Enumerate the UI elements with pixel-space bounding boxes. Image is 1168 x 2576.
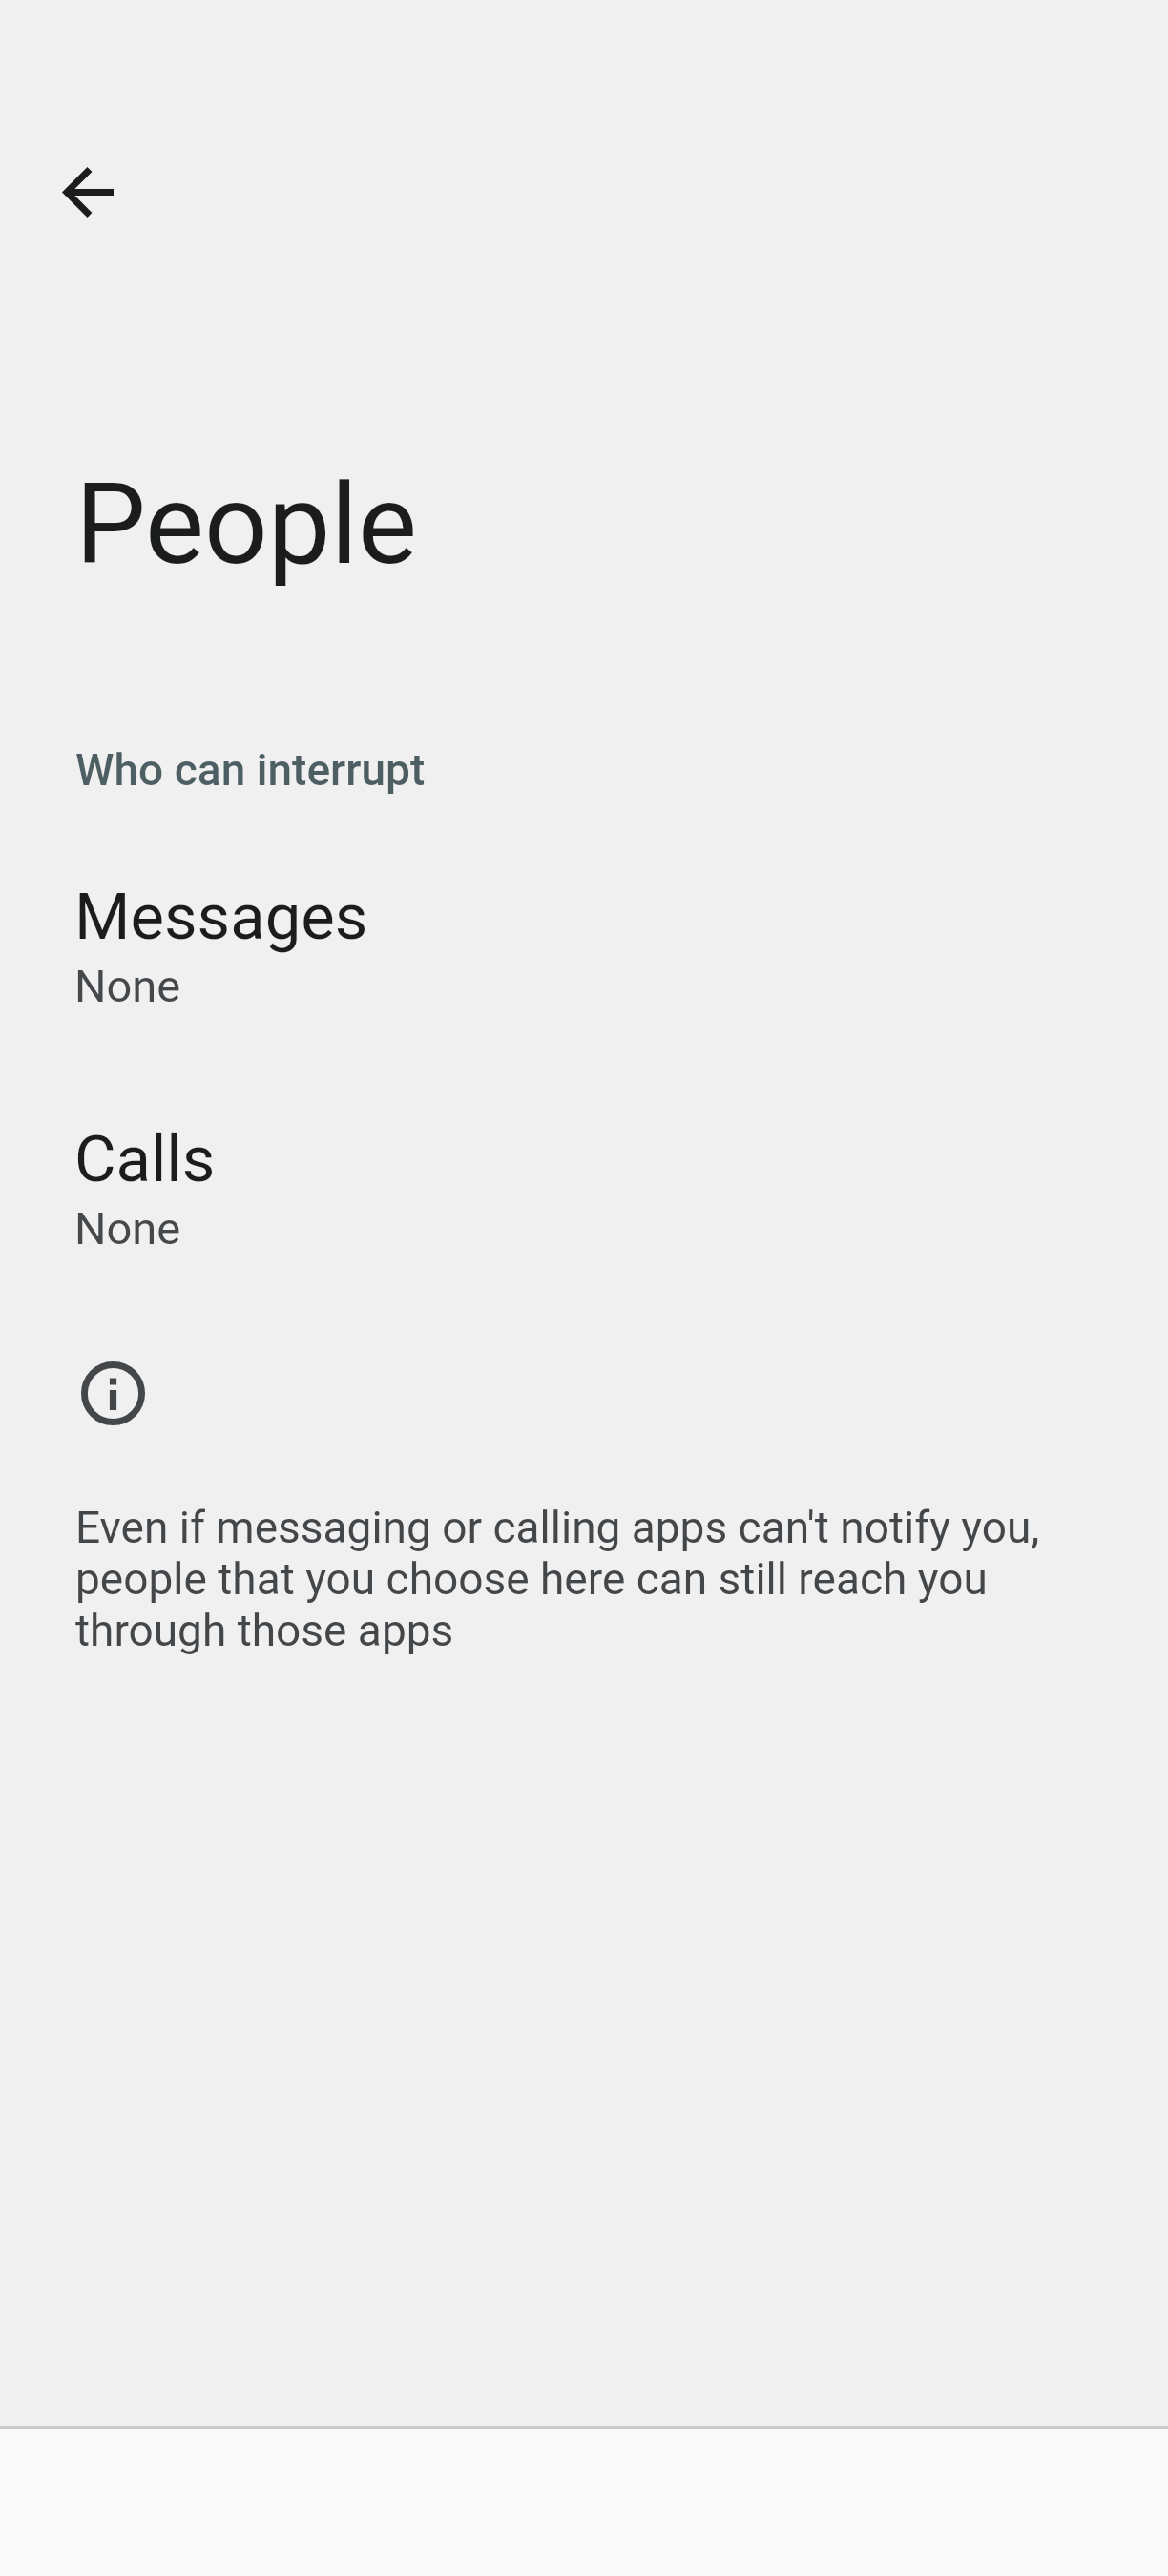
button[interactable]: Messages	[0, 864, 1168, 1036]
staticText: None	[74, 960, 181, 1012]
staticText: Messages	[74, 880, 368, 955]
staticText: None	[74, 1202, 181, 1255]
other: Information	[81, 1361, 145, 1425]
button[interactable]: Navigate up	[39, 144, 136, 240]
button[interactable]: Calls	[0, 1107, 1168, 1278]
staticText: People	[75, 459, 418, 590]
staticText: Even if messaging or calling apps can't …	[75, 1502, 1087, 1656]
staticText: Calls	[74, 1122, 216, 1197]
staticText: Who can interrupt	[75, 744, 426, 796]
